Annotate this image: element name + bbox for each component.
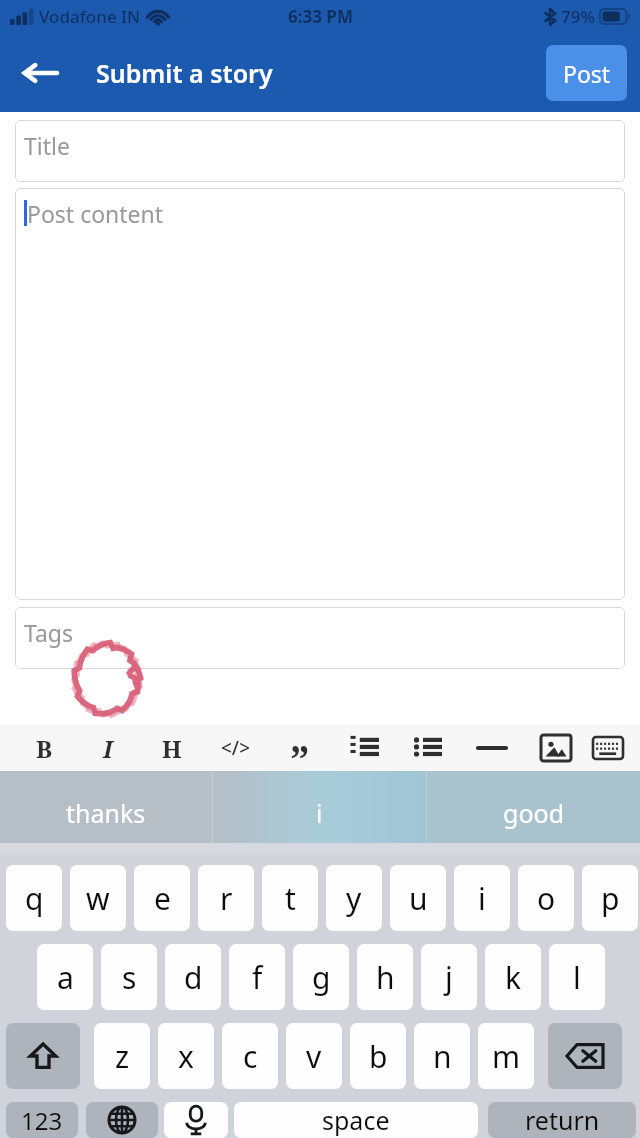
button[interactable]: c [222,1023,278,1089]
staticText: Post [563,58,611,89]
button[interactable]: Horizontal rule [460,725,524,771]
button[interactable]: f [229,944,285,1010]
button[interactable]: y [326,865,382,931]
button[interactable]: Tags [15,607,625,669]
button[interactable]: Numbered list [332,725,396,771]
button[interactable]: o [518,865,574,931]
button[interactable]: space [234,1102,478,1138]
button[interactable]: v [286,1023,342,1089]
button[interactable]: Heading [140,725,204,771]
button[interactable]: 123 [6,1102,78,1138]
staticText: i [316,796,323,830]
staticText: B [36,732,53,765]
button[interactable]: Change keyboard [86,1102,158,1138]
button[interactable]: Insert image [524,725,588,771]
button[interactable]: m [478,1023,534,1089]
staticText: good [503,796,565,830]
button[interactable]: Quote [268,725,332,771]
staticText: Tags [24,617,74,648]
staticText: j [445,957,453,998]
button[interactable]: Post [546,45,627,101]
staticText: x [178,1036,194,1077]
staticText: 79% [561,5,595,28]
button[interactable]: Back [12,45,68,101]
button[interactable]: Bold [12,725,76,771]
button[interactable]: Post content [15,188,625,600]
staticText: Submit a story [96,56,273,90]
staticText: ” [290,732,310,778]
staticText: Vodafone IN [39,5,141,28]
button[interactable]: q [6,865,62,931]
staticText: q [25,878,44,919]
button[interactable]: z [94,1023,150,1089]
button[interactable]: Shift [6,1023,80,1089]
staticText: i [478,878,486,919]
button[interactable]: good [427,771,640,855]
staticText: </> [221,735,251,761]
staticText: 6:33 PM [288,5,353,28]
staticText: e [154,878,171,919]
button[interactable]: s [101,944,157,1010]
button[interactable]: p [582,865,638,931]
staticText: return [525,1103,600,1137]
button[interactable]: n [414,1023,470,1089]
button[interactable]: Backspace [548,1023,622,1089]
staticText: s [122,957,137,998]
staticText: n [433,1036,452,1077]
button[interactable]: thanks [0,771,212,855]
button[interactable]: t [262,865,318,931]
button[interactable]: d [165,944,221,1010]
staticText: c [243,1036,258,1077]
staticText: thanks [66,796,146,830]
button[interactable]: return [488,1102,636,1138]
staticText: o [537,878,556,919]
button[interactable]: j [421,944,477,1010]
button[interactable]: i [213,771,426,855]
button[interactable]: Title [15,120,625,182]
staticText: k [505,957,522,998]
button[interactable]: e [134,865,190,931]
staticText: Title [24,130,70,161]
staticText: r [220,878,233,919]
staticText: g [312,957,331,998]
button[interactable]: l [549,944,605,1010]
button[interactable]: x [158,1023,214,1089]
staticText: d [184,957,203,998]
staticText: y [346,878,362,919]
staticText: b [369,1036,388,1077]
staticText: I [103,732,113,765]
staticText: l [573,957,581,998]
button[interactable]: Hide keyboard [588,725,628,771]
button[interactable]: b [350,1023,406,1089]
staticText: H [162,732,182,765]
staticText: m [492,1036,521,1077]
staticText: v [306,1036,322,1077]
button[interactable]: u [390,865,446,931]
button[interactable]: r [198,865,254,931]
button[interactable]: w [70,865,126,931]
button[interactable]: Dictate [164,1102,228,1138]
button[interactable]: Bulleted list [396,725,460,771]
button[interactable]: Code [204,725,268,771]
staticText: Post content [27,198,164,229]
staticText: z [115,1036,130,1077]
button[interactable]: Italic [76,725,140,771]
button[interactable]: g [293,944,349,1010]
button[interactable]: i [454,865,510,931]
button[interactable]: h [357,944,413,1010]
staticText: f [252,957,263,998]
staticText: a [57,957,74,998]
staticText: space [322,1103,390,1137]
staticText: p [601,878,620,919]
button[interactable]: a [37,944,93,1010]
staticText: t [285,878,296,919]
staticText: h [376,957,395,998]
staticText: u [409,878,428,919]
staticText: w [86,878,110,919]
staticText: 123 [21,1104,63,1137]
button[interactable]: k [485,944,541,1010]
